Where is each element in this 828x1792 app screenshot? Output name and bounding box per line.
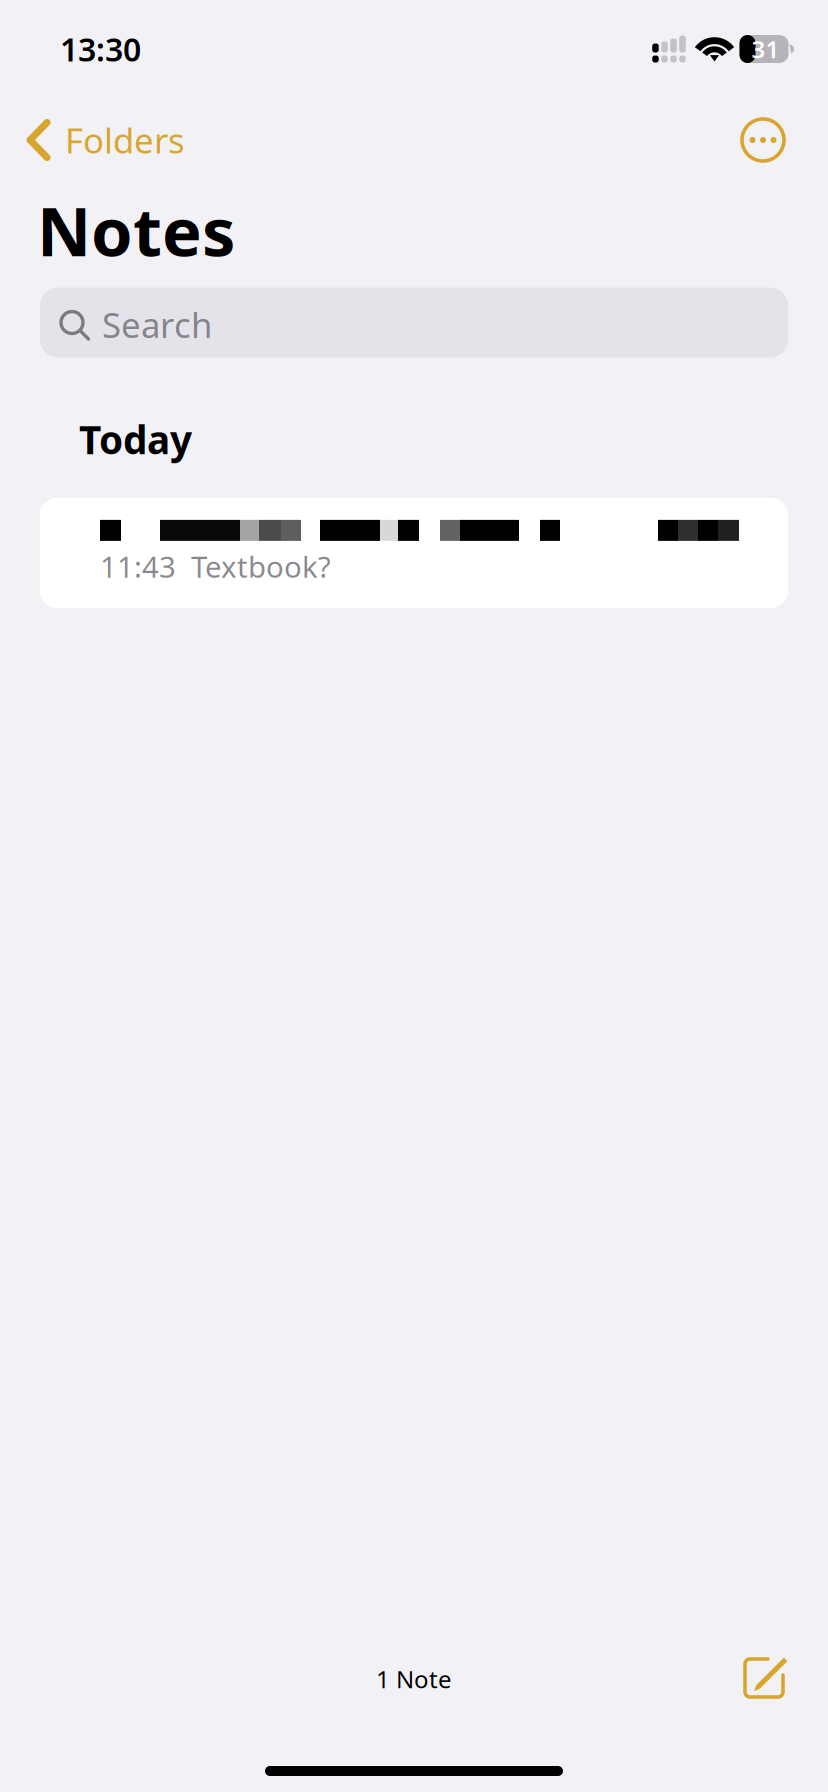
button[interactable]: Folders: [0, 101, 213, 179]
staticText: 13:30: [60, 28, 141, 70]
staticText: 11:43: [100, 547, 176, 586]
staticText: Today: [79, 413, 192, 465]
staticText: Notes: [37, 186, 235, 274]
button[interactable]: New Note: [728, 1644, 804, 1718]
staticText: Search: [102, 301, 212, 347]
staticText: Textbook?: [191, 547, 331, 586]
button[interactable]: More: [722, 103, 828, 177]
staticText: 1 Note: [376, 1663, 452, 1695]
staticText: 31: [751, 33, 779, 65]
button[interactable]: 11:43: [40, 498, 788, 608]
staticText: Folders: [65, 117, 185, 163]
button[interactable]: Search: [40, 287, 788, 357]
